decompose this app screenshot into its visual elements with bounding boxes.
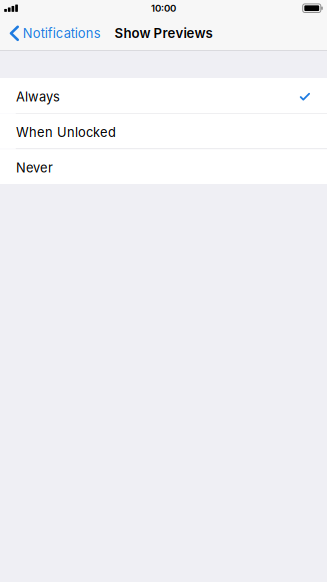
staticText: 10:00 — [151, 2, 176, 14]
staticText: Notifications — [23, 25, 101, 41]
staticText: When Unlocked — [16, 125, 116, 140]
button[interactable]: Never — [0, 149, 327, 184]
staticText: Show Previews — [114, 25, 212, 41]
staticText: Always — [16, 89, 60, 105]
button[interactable]: Always — [0, 78, 327, 113]
staticText: Never — [16, 160, 53, 176]
button[interactable]: When Unlocked — [0, 114, 327, 149]
button[interactable]: Notifications — [0, 19, 107, 47]
